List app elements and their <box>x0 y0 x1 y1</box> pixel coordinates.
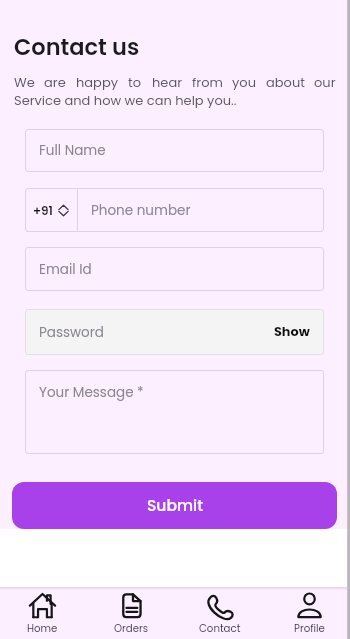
staticText: Your Message * <box>39 383 144 402</box>
staticText: happy <box>76 73 119 91</box>
staticText: Orders <box>114 621 149 635</box>
button[interactable]: Profile <box>279 587 339 639</box>
button[interactable]: Home <box>12 587 72 639</box>
button[interactable]: Your Message * <box>25 370 324 454</box>
button[interactable]: Email Id <box>25 247 324 291</box>
button[interactable]: Contact <box>190 587 250 639</box>
staticText: Profile <box>294 621 325 635</box>
staticText: Show <box>274 323 310 341</box>
staticText: to <box>128 73 142 91</box>
staticText: We <box>14 73 35 91</box>
staticText: +91 <box>33 202 53 219</box>
staticText: hear <box>152 73 183 91</box>
staticText: Submit <box>147 495 203 517</box>
staticText: you <box>232 73 256 91</box>
staticText: Contact us <box>14 31 140 62</box>
staticText: Contact <box>199 621 241 635</box>
staticText: are <box>44 73 66 91</box>
button[interactable]: Orders <box>101 587 161 639</box>
staticText: Password <box>39 323 104 342</box>
staticText: Email Id <box>39 260 92 279</box>
staticText: about <box>266 73 305 91</box>
staticText: Service and how we can help you.. <box>14 91 237 109</box>
button[interactable]: Password <box>39 309 310 355</box>
staticText: Home <box>27 621 58 635</box>
button[interactable]: Phone number <box>78 188 324 232</box>
staticText: Phone number <box>91 201 191 220</box>
staticText: Full Name <box>39 141 106 160</box>
button[interactable]: Full Name <box>25 129 324 172</box>
staticText: from <box>192 73 223 91</box>
button[interactable]: +91 <box>25 188 77 232</box>
staticText: our <box>314 73 336 91</box>
button[interactable]: Submit <box>12 482 337 529</box>
